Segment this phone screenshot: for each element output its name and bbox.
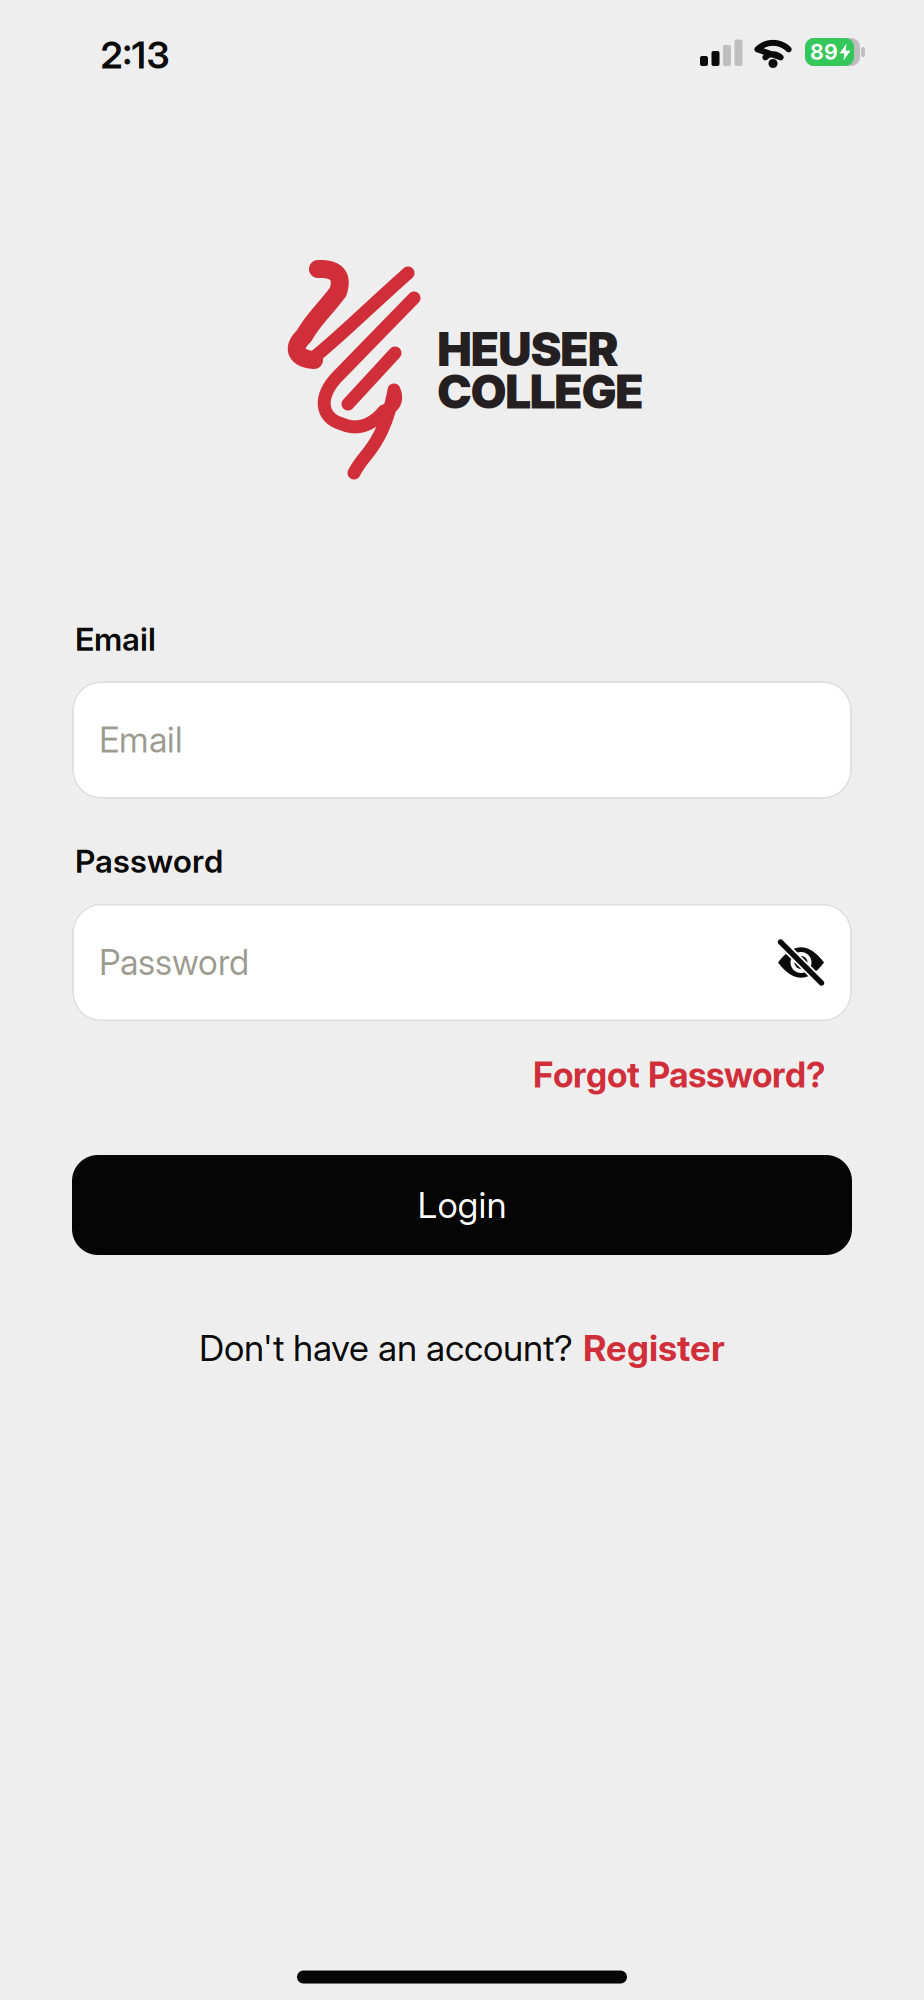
staticText: Register: [583, 1327, 725, 1369]
staticText: Email: [99, 720, 183, 760]
textField[interactable]: Email: [99, 720, 471, 760]
staticText: Don't have an account?: [199, 1327, 573, 1369]
staticText: Email: [75, 620, 156, 658]
staticText: 2:13: [100, 33, 169, 77]
secureTextField[interactable]: Password: [99, 942, 471, 983]
staticText: COLLEGE: [437, 364, 644, 419]
staticText: HEUSER: [437, 321, 618, 377]
button[interactable]: Login: [72, 1155, 852, 1255]
staticText: Forgot Password?: [533, 1055, 826, 1095]
button[interactable]: Forgot Password?: [0, 1055, 924, 1095]
button[interactable]: Register: [583, 1327, 725, 1369]
button[interactable]: Show password: [776, 937, 826, 987]
staticText: 89: [810, 39, 838, 65]
staticText: Password: [75, 842, 223, 880]
staticText: Login: [417, 1184, 506, 1226]
staticText: Password: [99, 942, 249, 983]
